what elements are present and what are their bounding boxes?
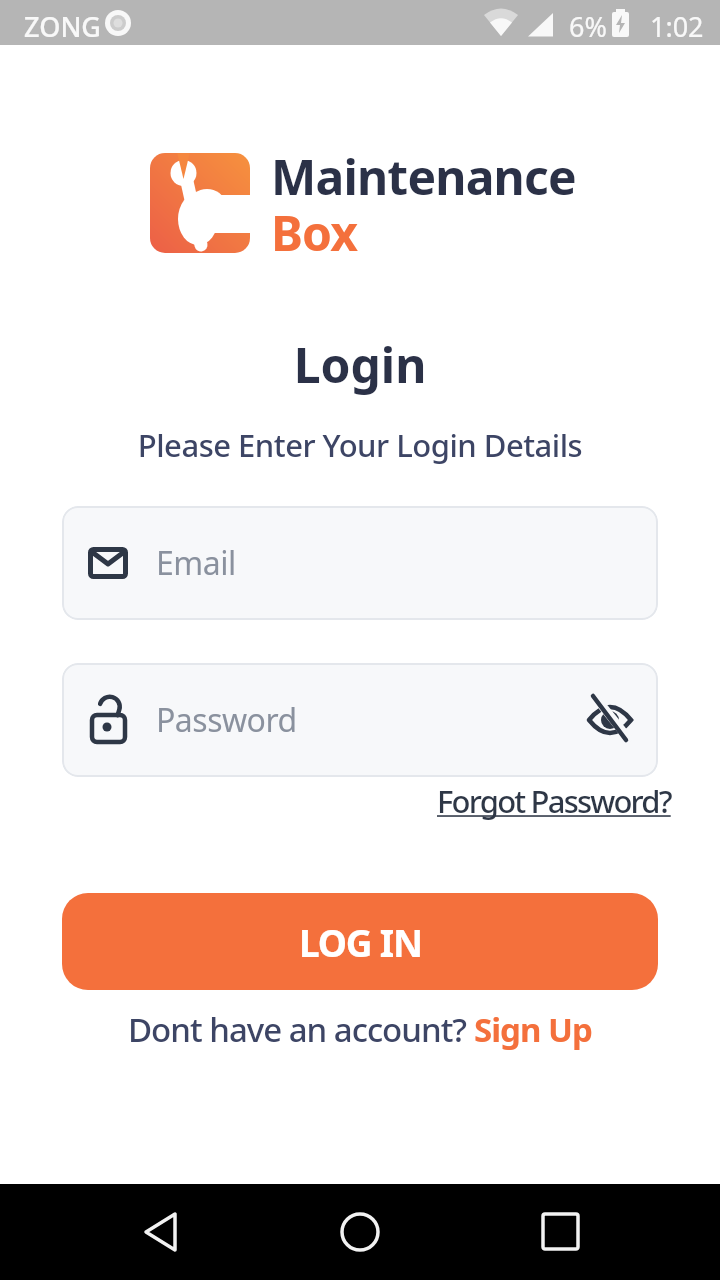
- staticText: 1:02: [650, 8, 704, 45]
- button[interactable]: [480, 1184, 720, 1280]
- button[interactable]: Password: [62, 663, 658, 777]
- staticText: Please Enter Your Login Details: [0, 424, 720, 466]
- staticText: Password: [156, 698, 297, 742]
- staticText: Login: [0, 332, 720, 397]
- staticText: Maintenance: [271, 144, 576, 209]
- staticText: Email: [156, 541, 236, 585]
- button[interactable]: Sign Up: [474, 1007, 592, 1052]
- staticText: Dont have an account?: [128, 1007, 474, 1052]
- button[interactable]: [588, 700, 634, 740]
- button[interactable]: LOG IN: [62, 893, 658, 990]
- button[interactable]: Forgot Password?: [437, 780, 671, 822]
- staticText: Box: [271, 200, 358, 265]
- staticText: ZONG: [24, 8, 101, 45]
- button[interactable]: [0, 1184, 240, 1280]
- button[interactable]: [240, 1184, 480, 1280]
- button[interactable]: Email: [62, 506, 658, 620]
- staticText: 6%: [569, 8, 607, 45]
- staticText: LOG IN: [299, 917, 422, 967]
